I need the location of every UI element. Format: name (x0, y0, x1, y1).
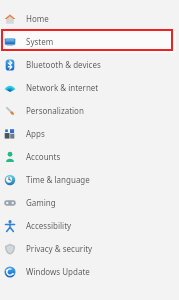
staticText: Bluetooth & devices (26, 59, 101, 70)
button[interactable]: Bluetooth & devices (0, 53, 179, 76)
staticText: Windows Update (26, 266, 90, 277)
staticText: Privacy & security (26, 243, 93, 254)
staticText: Accessibility (26, 220, 72, 231)
staticText: Accounts (26, 151, 61, 162)
staticText: Home (26, 13, 49, 24)
button[interactable]: Network & internet (0, 76, 179, 99)
button[interactable]: Time & language (0, 168, 179, 191)
button[interactable]: Accounts (0, 145, 179, 168)
button[interactable]: Personalization (0, 99, 179, 122)
button[interactable]: Windows Update (0, 260, 179, 283)
staticText: System (26, 36, 54, 47)
staticText: Time & language (26, 174, 90, 185)
staticText: Network & internet (26, 82, 99, 93)
button[interactable]: Privacy & security (0, 237, 179, 260)
staticText: Apps (26, 128, 45, 139)
button[interactable]: System (0, 30, 179, 53)
button[interactable]: Apps (0, 122, 179, 145)
button[interactable]: Home (0, 7, 179, 30)
staticText: Personalization (26, 105, 84, 116)
staticText: Gaming (26, 197, 56, 208)
button[interactable]: Gaming (0, 191, 179, 214)
button[interactable]: Accessibility (0, 214, 179, 237)
